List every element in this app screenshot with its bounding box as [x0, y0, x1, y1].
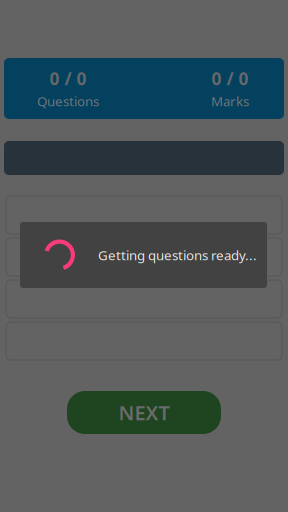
staticText: 0 / 0 — [49, 67, 86, 90]
staticText: NEXT — [118, 399, 169, 426]
staticText: Questions — [37, 92, 99, 110]
button[interactable] — [6, 238, 282, 276]
staticText: 0 / 0 — [211, 67, 248, 90]
button[interactable] — [6, 280, 282, 318]
button[interactable] — [6, 196, 282, 234]
staticText: Getting questions ready... — [98, 246, 257, 264]
staticText: Marks — [211, 92, 249, 110]
button[interactable]: NEXT — [67, 391, 221, 434]
